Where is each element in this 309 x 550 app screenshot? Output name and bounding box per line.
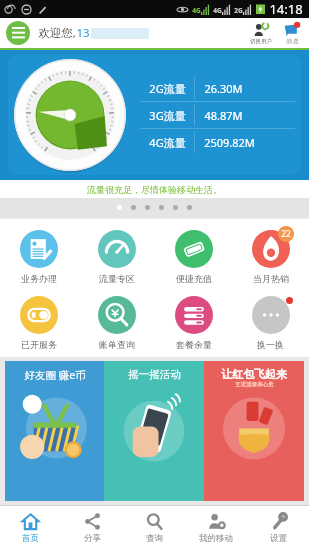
staticText: 换一换	[257, 339, 284, 350]
button[interactable]: 设置	[247, 506, 309, 550]
button[interactable]: 套餐余量	[155, 288, 232, 354]
button[interactable]: 消息	[281, 21, 303, 45]
staticText: 业务办理	[21, 273, 57, 284]
button[interactable]: 账单查询	[78, 288, 155, 354]
staticText: 摇一摇活动	[128, 368, 181, 381]
staticText: 首页	[22, 533, 39, 544]
staticText: 当月热销	[253, 273, 289, 284]
button[interactable]: 首页	[0, 506, 61, 550]
button[interactable]: Menu	[6, 21, 30, 45]
button[interactable]: 便捷充值	[155, 222, 232, 288]
staticText: 好友圈 赚e币	[24, 368, 86, 382]
button[interactable]: 已开服务	[0, 288, 78, 354]
staticText: 26.30M	[204, 81, 243, 96]
staticText: 4G	[213, 6, 222, 15]
button[interactable]: 我的移动	[185, 506, 247, 550]
staticText: 切换用户	[250, 38, 272, 45]
button[interactable]: 查询	[123, 506, 185, 550]
button[interactable]: 让红包飞起来	[204, 361, 304, 501]
button[interactable]: 换一换	[232, 288, 309, 354]
button[interactable]: 分享	[61, 506, 123, 550]
staticText: 查询	[146, 533, 163, 544]
staticText: 设置	[270, 533, 287, 544]
staticText: 流量专区	[99, 273, 135, 284]
staticText: 消 息	[286, 37, 299, 45]
staticText: 让红包飞起来	[221, 367, 287, 381]
staticText: 分享	[84, 533, 101, 544]
button[interactable]: 切换用户	[247, 22, 275, 45]
staticText: 14:18	[269, 0, 303, 18]
button[interactable]: 好友圈 赚e币	[5, 361, 104, 501]
button[interactable]: 流量专区	[78, 222, 155, 288]
staticText: 4G流量	[149, 135, 186, 150]
staticText: 2G流量	[149, 81, 186, 96]
button[interactable]: 摇一摇活动	[104, 361, 204, 501]
staticText: 3G流量	[149, 108, 186, 123]
staticText: 2G	[234, 6, 243, 15]
staticText: 2509.82M	[204, 135, 255, 150]
button[interactable]: 22	[232, 222, 309, 288]
staticText: 互送流量表心意	[235, 381, 274, 388]
staticText: 4G	[192, 6, 201, 15]
staticText: 套餐余量	[176, 339, 212, 350]
staticText: 48.87M	[204, 108, 243, 123]
staticText: 账单查询	[99, 339, 135, 350]
staticText: 我的移动	[199, 533, 233, 544]
staticText: 便捷充值	[176, 273, 212, 284]
staticText: 欢迎您,	[38, 25, 76, 41]
staticText: 已开服务	[21, 339, 57, 350]
staticText: 22	[281, 228, 291, 240]
button[interactable]: 业务办理	[0, 222, 78, 288]
staticText: 13	[76, 25, 90, 41]
staticText: 流量很充足，尽情体验移动生活。	[87, 184, 222, 195]
